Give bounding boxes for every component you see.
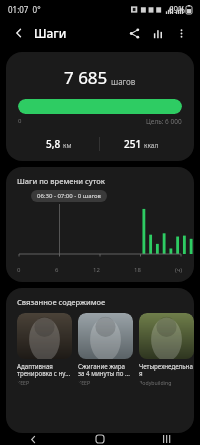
staticText: 01:07 0° bbox=[8, 4, 41, 15]
button[interactable]: Шаги по времени суток bbox=[6, 167, 194, 282]
button[interactable]: Сжигание жира за 4 минуты по Та… bbox=[78, 313, 133, 386]
staticText: 0 bbox=[17, 266, 21, 274]
button[interactable]: Statistics bbox=[146, 21, 170, 45]
staticText: Четырехнедельная подготовка к забе… bbox=[139, 362, 194, 378]
staticText: 251 bbox=[124, 137, 142, 151]
staticText: Цель: 6 000 bbox=[146, 117, 182, 126]
button[interactable]: Share bbox=[122, 21, 146, 45]
staticText: Адаптивная тренировка с нуля bbox=[17, 362, 72, 378]
staticText: 5,8 bbox=[46, 137, 61, 151]
staticText: 7 685 bbox=[64, 66, 108, 89]
staticText: (ч) bbox=[175, 266, 183, 274]
button[interactable]: Back bbox=[8, 22, 30, 44]
staticText: 0 bbox=[18, 117, 22, 125]
staticText: 12 bbox=[93, 266, 100, 274]
button[interactable]: Recent apps bbox=[133, 433, 200, 445]
button[interactable]: Четырехнедельная подготовка к забе… bbox=[139, 313, 194, 386]
button[interactable]: 7 685 bbox=[6, 52, 194, 161]
staticText: 06:30 - 07:00 - 0 шагов bbox=[37, 192, 101, 200]
staticText: KEEP bbox=[78, 379, 91, 386]
staticText: KEEP bbox=[17, 379, 30, 386]
staticText: Шаги по времени суток bbox=[17, 176, 105, 186]
staticText: ккал bbox=[144, 141, 159, 150]
button[interactable]: Адаптивная тренировка с нуля bbox=[17, 313, 72, 386]
staticText: шагов bbox=[111, 76, 136, 87]
button[interactable]: Back bbox=[0, 433, 66, 445]
staticText: 6 bbox=[55, 266, 59, 274]
staticText: Сжигание жира за 4 минуты по Та… bbox=[78, 362, 133, 378]
button[interactable]: More options bbox=[170, 22, 192, 44]
staticText: км bbox=[63, 141, 72, 150]
staticText: 18 bbox=[134, 266, 141, 274]
staticText: Шаги bbox=[34, 25, 67, 41]
staticText: 69% bbox=[169, 4, 185, 15]
staticText: Связанное содержимое bbox=[17, 297, 106, 307]
button[interactable]: Home bbox=[66, 433, 133, 445]
staticText: Bodybuilding bbox=[139, 379, 172, 386]
